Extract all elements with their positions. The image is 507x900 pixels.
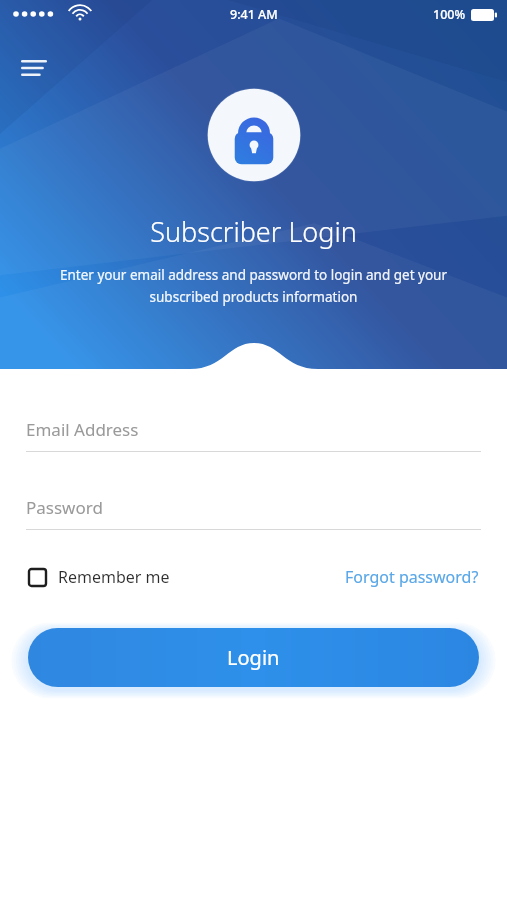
- button[interactable]: Login: [28, 628, 479, 687]
- staticText: Enter your email address and password to…: [28, 266, 479, 306]
- button[interactable]: Email Address: [0, 418, 507, 452]
- staticText: Forgot password?: [345, 566, 479, 588]
- staticText: Subscriber Login: [150, 213, 357, 250]
- staticText: Remember me: [58, 566, 170, 588]
- button[interactable]: Password: [0, 496, 507, 530]
- staticText: Login: [227, 644, 280, 671]
- staticText: Password: [26, 496, 103, 519]
- staticText: 9:41 AM: [230, 6, 278, 23]
- staticText: Email Address: [26, 418, 139, 441]
- button[interactable]: Remember me: [26, 562, 172, 592]
- button[interactable]: Menu: [14, 48, 54, 88]
- staticText: 100%: [433, 6, 466, 23]
- button[interactable]: Forgot password?: [343, 562, 481, 592]
